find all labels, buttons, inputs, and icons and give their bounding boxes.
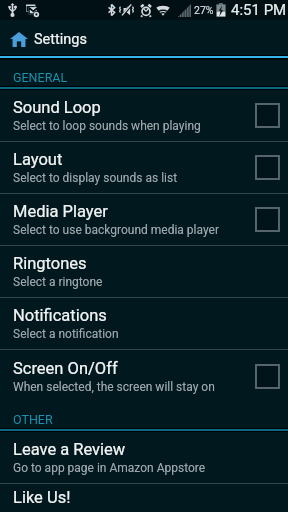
button[interactable]: Media Player <box>0 194 288 246</box>
button[interactable]: Leave a Review <box>0 432 288 484</box>
staticText: Layout <box>13 150 63 169</box>
staticText: 27% <box>194 4 214 16</box>
staticText: Like Us! <box>13 488 71 507</box>
staticText: OTHER <box>13 412 53 427</box>
staticText: Screen On/Off <box>13 359 118 378</box>
staticText: 4:51 PM <box>231 1 287 19</box>
button[interactable]: Like Us! <box>0 484 288 512</box>
staticText: Select to display sounds as list <box>13 171 178 185</box>
staticText: Ringtones <box>13 254 87 273</box>
staticText: When selected, the screen will stay on <box>13 380 215 394</box>
staticText: Select a notification <box>13 327 119 341</box>
staticText: Notifications <box>13 306 107 325</box>
staticText: Media Player <box>13 202 108 221</box>
staticText: Leave a Review <box>13 440 126 459</box>
staticText: GENERAL <box>13 70 68 85</box>
staticText: Settings <box>34 31 87 48</box>
button[interactable]: Notifications <box>0 298 288 350</box>
button[interactable]: Sound Loop <box>0 90 288 142</box>
staticText: Select to use background media player <box>13 223 219 237</box>
staticText: Select to loop sounds when playing <box>13 119 201 133</box>
button[interactable]: Ringtones <box>0 246 288 298</box>
staticText: Go to app page in Amazon Appstore <box>13 461 206 475</box>
staticText: Sound Loop <box>13 98 101 117</box>
button[interactable]: Screen On/Off <box>0 350 288 402</box>
other: Home <box>10 32 28 47</box>
button[interactable]: Layout <box>0 142 288 194</box>
staticText: Select a ringtone <box>13 275 103 289</box>
button[interactable]: Home <box>0 20 288 55</box>
